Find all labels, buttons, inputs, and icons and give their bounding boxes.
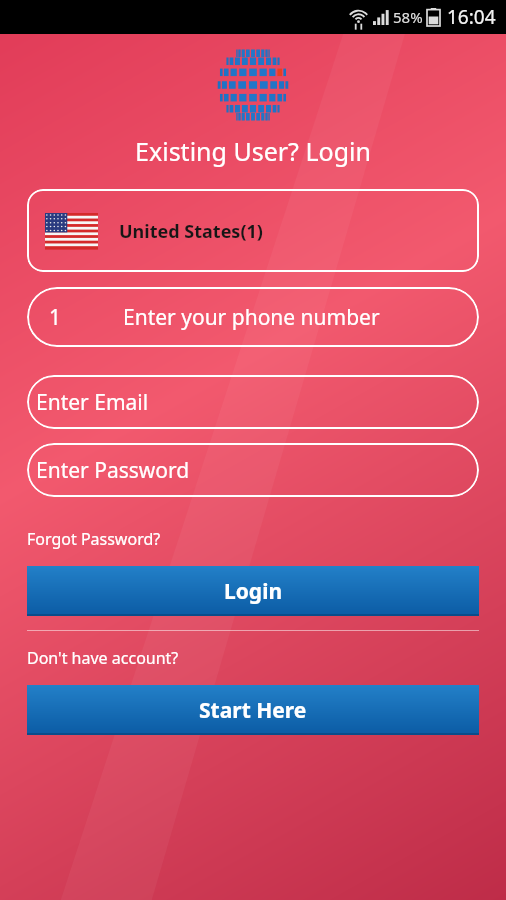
staticText: United States(1) bbox=[119, 219, 263, 244]
button[interactable]: Login bbox=[27, 566, 479, 616]
button[interactable]: Enter Password bbox=[27, 443, 479, 497]
staticText: 58% bbox=[393, 7, 423, 27]
staticText: 1 bbox=[49, 303, 62, 332]
staticText: Don't have account? bbox=[27, 647, 179, 669]
button[interactable]: Don't have account? bbox=[27, 647, 479, 669]
button[interactable]: United States(1) bbox=[27, 189, 479, 272]
staticText: Forgot Password? bbox=[27, 528, 161, 550]
staticText: 16:04 bbox=[447, 4, 496, 30]
button[interactable]: Enter Email bbox=[27, 375, 479, 429]
button[interactable]: 1 bbox=[27, 287, 479, 347]
staticText: Enter Email bbox=[36, 388, 149, 417]
button[interactable]: Start Here bbox=[27, 685, 479, 735]
other: App logo bbox=[212, 44, 294, 126]
staticText: Enter your phone number bbox=[123, 303, 380, 332]
staticText: Existing User? Login bbox=[135, 134, 371, 168]
staticText: Login bbox=[224, 577, 283, 606]
staticText: Start Here bbox=[199, 696, 307, 725]
button[interactable]: Forgot Password? bbox=[27, 528, 479, 550]
staticText: Enter Password bbox=[36, 456, 190, 485]
